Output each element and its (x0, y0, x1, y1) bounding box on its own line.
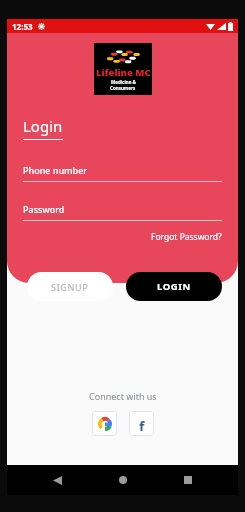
staticText: Forgot Password? (151, 231, 222, 243)
button[interactable]: Home (108, 465, 138, 495)
staticText: f (139, 417, 145, 431)
staticText: 12:53 (12, 21, 33, 32)
staticText: SIGNUP (51, 281, 89, 293)
button[interactable]: Back (42, 465, 72, 495)
button[interactable]: Recent apps (173, 465, 203, 495)
staticText: LOGIN (157, 280, 191, 293)
staticText: Consumers (110, 85, 136, 91)
button[interactable]: Phone number (23, 164, 222, 182)
staticText: Medicine & (111, 79, 136, 85)
staticText: Phone number (23, 164, 88, 176)
button[interactable]: Password (23, 203, 222, 221)
staticText: Login (23, 116, 63, 136)
button[interactable]: Forgot Password? (23, 231, 222, 243)
staticText: Lifeline MC (96, 66, 151, 79)
staticText: Connect with us (89, 390, 157, 402)
button[interactable]: Sign in with Google (92, 411, 117, 436)
button[interactable]: SIGNUP (27, 272, 113, 301)
button[interactable]: Sign in with Facebook (129, 411, 154, 436)
staticText: Password (23, 203, 65, 215)
button[interactable]: LOGIN (126, 272, 222, 301)
